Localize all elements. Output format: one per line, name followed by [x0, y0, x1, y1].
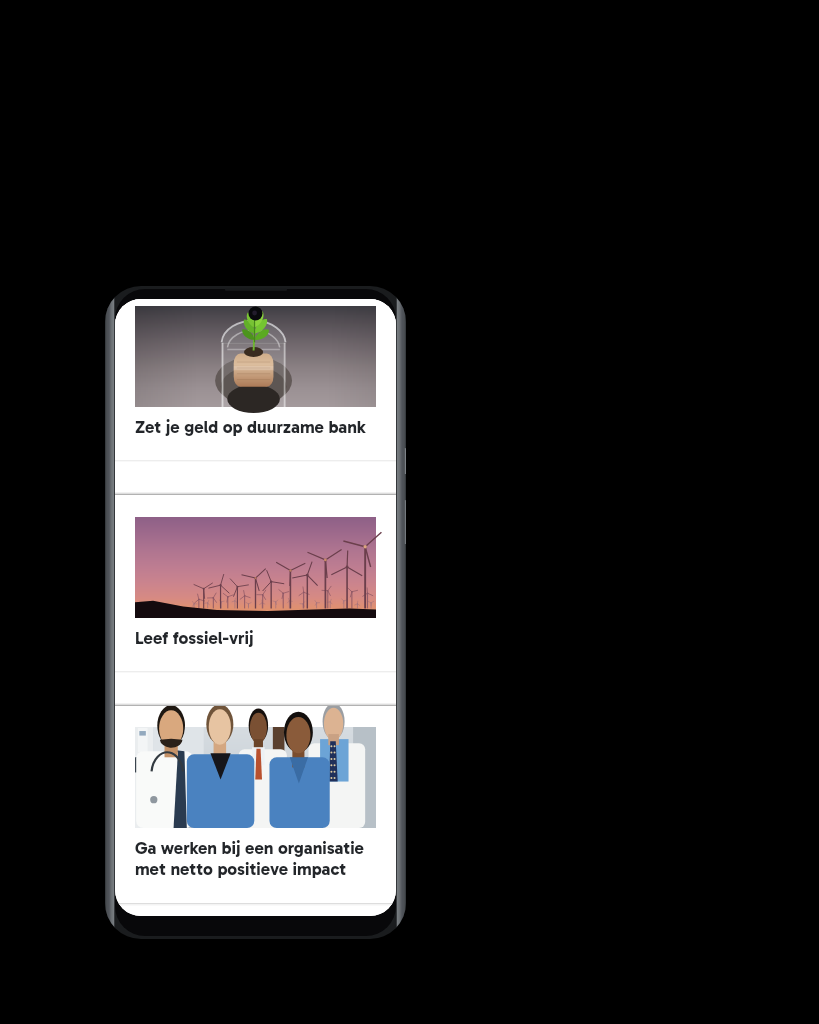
- button[interactable]: Zet je geld op duurzame bank: [115, 299, 396, 460]
- staticText: Ga werken bij een organisatie met netto …: [135, 838, 364, 880]
- staticText: Leef fossiel-vrij: [135, 628, 254, 649]
- button[interactable]: Leef fossiel-vrij: [115, 495, 396, 671]
- button[interactable]: Ga werken bij een organisatie met netto …: [115, 706, 396, 897]
- staticText: Zet je geld op duurzame bank: [135, 417, 366, 438]
- button[interactable]: [115, 903, 396, 916]
